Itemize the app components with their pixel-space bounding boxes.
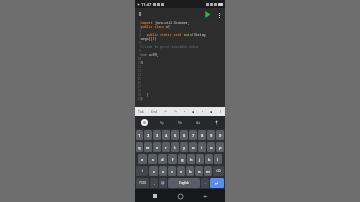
button[interactable]: l [214, 154, 222, 164]
button[interactable]: 7 [189, 130, 197, 140]
button[interactable]: v [177, 166, 185, 176]
button[interactable]: b [186, 166, 194, 176]
staticText: p [219, 145, 222, 150]
staticText: g [181, 157, 184, 162]
button[interactable]: r [162, 142, 170, 152]
button[interactable]: i [198, 142, 206, 152]
button[interactable]: • [201, 109, 205, 114]
button[interactable]: f [168, 154, 177, 164]
button[interactable]: t [171, 142, 179, 152]
staticText: s [152, 157, 154, 162]
staticText: Tab [138, 109, 144, 114]
button[interactable]: x [159, 166, 167, 176]
button[interactable]: q [136, 142, 143, 152]
button[interactable]: . [201, 178, 209, 188]
staticText: o [210, 145, 213, 150]
button[interactable]: ☺ [159, 178, 167, 188]
button[interactable]: g [178, 154, 186, 164]
button[interactable]: e [153, 142, 161, 152]
staticText: public static void [141, 33, 184, 37]
staticText: ( [220, 109, 222, 114]
button[interactable]: u [189, 142, 197, 152]
button[interactable]: Sy [153, 116, 171, 129]
button[interactable]: o [207, 142, 215, 152]
button[interactable]: Voice input [207, 116, 225, 129]
button[interactable]: ( [219, 109, 223, 114]
button[interactable]: 8 [198, 130, 206, 140]
staticText: Sh [178, 120, 183, 125]
button[interactable]: y [180, 142, 188, 152]
button[interactable]: ?123 [136, 178, 149, 188]
button[interactable]: d [158, 154, 167, 164]
button[interactable]: 6 [180, 130, 188, 140]
button[interactable]: ⇧ [136, 166, 148, 176]
button[interactable]: Home [175, 191, 185, 201]
button[interactable]: 5 [171, 130, 179, 140]
button[interactable]: 0 [216, 130, 224, 140]
button[interactable]: ⌫ [213, 166, 224, 176]
staticText: 11 [136, 61, 141, 65]
button[interactable]: p [216, 142, 224, 152]
staticText: j [199, 157, 201, 162]
button[interactable]: 9 [207, 130, 215, 140]
button[interactable]: 2 [144, 130, 152, 140]
button[interactable]: Recents [150, 191, 160, 201]
staticText: • [184, 109, 186, 114]
staticText: } [141, 97, 143, 101]
staticText: Sy [160, 120, 164, 125]
staticText: a=99; [149, 53, 159, 57]
button[interactable]: English [168, 178, 200, 188]
staticText: 1 [136, 21, 141, 25]
button[interactable]: Run [203, 10, 212, 19]
button[interactable]: c [168, 166, 176, 176]
button[interactable]: ▪ [191, 110, 196, 114]
staticText: 2 [136, 25, 141, 29]
button[interactable]: n [195, 166, 203, 176]
staticText: t [174, 145, 176, 150]
button[interactable]: More options [215, 11, 223, 19]
button[interactable]: ↶ [163, 110, 168, 114]
button[interactable]: m [204, 166, 212, 176]
button[interactable]: k [205, 154, 213, 164]
staticText: 7 [192, 133, 195, 138]
button[interactable]: 4 [162, 130, 170, 140]
staticText: m [206, 169, 210, 174]
staticText: d [161, 157, 164, 162]
staticText: ↵ [215, 181, 219, 186]
staticText: c [171, 169, 173, 174]
staticText: e [156, 145, 159, 150]
staticText: String [194, 33, 206, 37]
staticText: v [180, 169, 183, 174]
button[interactable]: ↷ [173, 110, 178, 114]
button[interactable]: 1 [136, 130, 143, 140]
button[interactable]: • [183, 109, 187, 114]
button[interactable]: Tab [137, 109, 145, 114]
staticText: 19 [136, 93, 141, 97]
staticText: 4 [165, 133, 168, 138]
button[interactable]: w [144, 142, 152, 152]
staticText: 3 [136, 29, 141, 33]
button[interactable]: Aa [189, 116, 207, 129]
staticText: 8 [136, 49, 141, 53]
staticText: u [192, 145, 195, 150]
button[interactable]: Menu [137, 11, 143, 17]
staticText: End [151, 109, 158, 114]
button[interactable]: j [196, 154, 204, 164]
button[interactable]: Enter [210, 178, 224, 188]
staticText: ↷ [174, 110, 177, 114]
staticText: 9 [210, 133, 213, 138]
staticText: f [172, 157, 174, 162]
button[interactable]: a [138, 154, 147, 164]
staticText: 4 [136, 33, 141, 37]
button[interactable]: h [187, 154, 195, 164]
button[interactable]: ▪ [209, 110, 214, 114]
button[interactable]: s [148, 154, 157, 164]
button[interactable]: Google [135, 116, 153, 129]
button[interactable]: End [150, 109, 159, 114]
staticText: 7 [136, 45, 141, 49]
button[interactable]: , [150, 178, 158, 188]
button[interactable]: Back [200, 191, 210, 201]
button[interactable]: 3 [153, 130, 161, 140]
button[interactable]: z [149, 166, 158, 176]
button[interactable]: Sh [171, 116, 189, 129]
